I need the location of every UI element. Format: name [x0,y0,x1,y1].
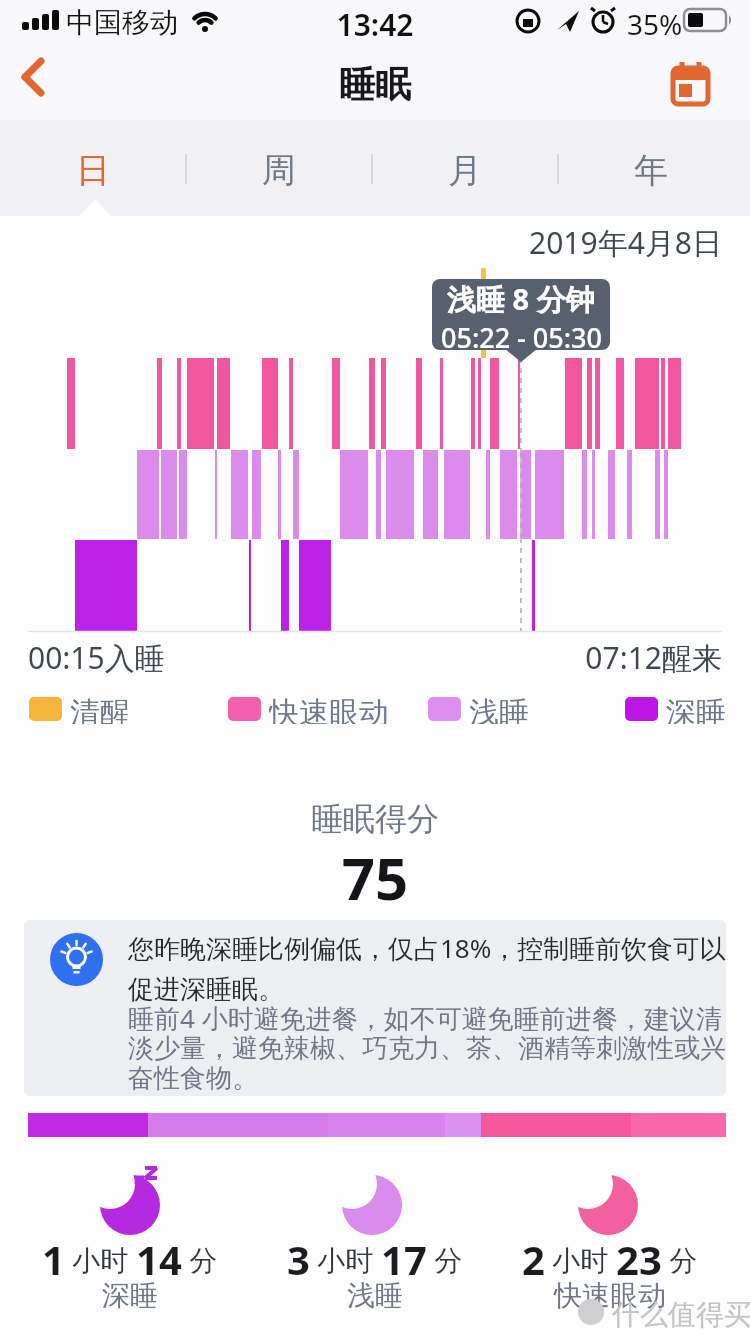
staticText: 睡眠得分 [0,799,750,839]
button[interactable]: 2 [485,1160,735,1320]
button[interactable]: 浅睡 [428,694,488,724]
button[interactable]: 周 [219,140,339,200]
staticText: 浅睡 8 分钟 [447,279,595,319]
staticText: 快速眼动 [485,1278,735,1313]
staticText: 05:22 - 05:30 [441,319,602,350]
staticText: 14 [136,1232,182,1286]
staticText: 13:42 [0,4,750,45]
button[interactable]: 清醒 [29,694,89,724]
button[interactable]: 年 [591,140,711,200]
staticText: 07:12醒来 [0,637,722,678]
staticText: 小时 [310,1240,381,1278]
staticText: 2019年4月8日 [0,222,722,263]
button[interactable]: 快速眼动 [228,694,348,724]
staticText: 深睡 [5,1278,255,1313]
staticText: 周 [262,149,296,192]
button[interactable] [8,52,64,108]
staticText: 17 [381,1232,427,1286]
staticText: 23 [616,1232,662,1286]
staticText: 年 [634,149,668,192]
button[interactable]: 浅睡 8 分钟 [432,279,610,350]
staticText: 00:15入睡 [28,637,165,678]
staticText: 2 [522,1232,545,1286]
staticText: 浅睡 [250,1278,500,1313]
staticText: 75 [0,838,750,917]
staticText: 日 [76,149,110,192]
staticText: 35% [627,5,683,43]
staticText: 3 [287,1232,310,1286]
staticText: 睡前4 小时避免进餐，如不可避免睡前进餐，建议清 淡少量，避免辣椒、巧克力、茶、… [128,1000,726,1095]
staticText: 快速眼动 [269,694,389,724]
staticText: 分 [182,1240,218,1278]
button[interactable] [664,56,720,112]
staticText: 中国移动 [66,5,178,40]
staticText: 分 [662,1240,698,1278]
staticText: 小时 [65,1240,136,1278]
staticText: 小时 [545,1240,616,1278]
button[interactable]: 1 [5,1160,255,1320]
staticText: 清醒 [70,694,130,724]
button[interactable]: 月 [405,140,525,200]
button[interactable]: 您昨晚深睡比例偏低，仅占18%，控制睡前饮食可以 促进深睡眠。 [24,920,726,1096]
button[interactable]: 日 [33,140,153,200]
staticText: 分 [427,1240,463,1278]
staticText: 月 [448,149,482,192]
staticText: 深睡 [666,694,726,724]
staticText: 什么值得买 [612,1297,750,1332]
button[interactable]: 深睡 [625,694,685,724]
staticText: 1 [42,1232,65,1286]
staticText: 浅睡 [469,694,529,724]
button[interactable]: 3 [250,1160,500,1320]
staticText: 您昨晚深睡比例偏低，仅占18%，控制睡前饮食可以 促进深睡眠。 [128,930,726,1006]
staticText: 睡眠 [0,62,750,107]
